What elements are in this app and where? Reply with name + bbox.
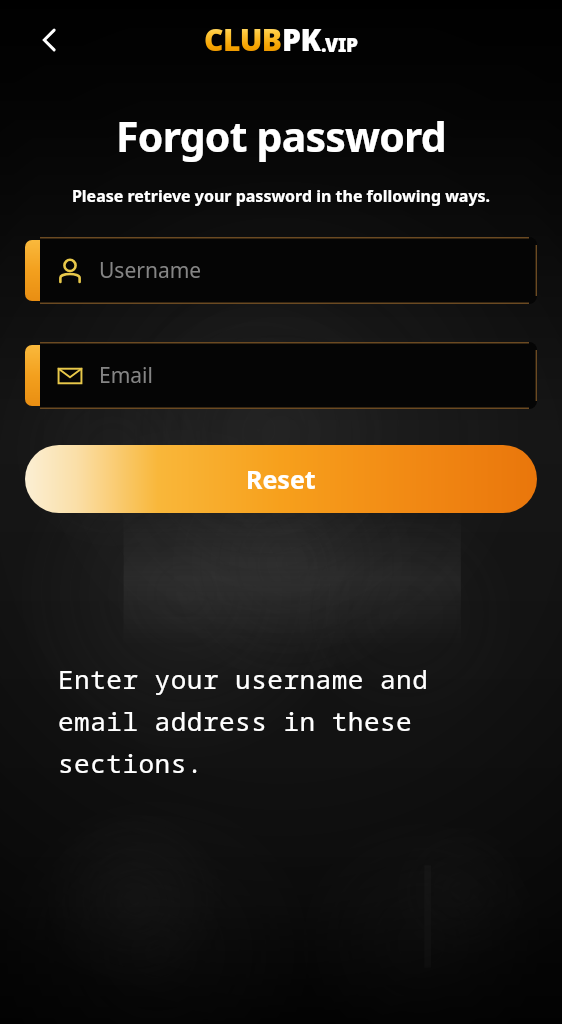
staticText: Username	[99, 256, 202, 285]
staticText: Reset	[246, 462, 316, 496]
button[interactable]: Reset	[25, 445, 537, 513]
staticText: Email	[99, 361, 153, 390]
staticText: Enter your username and email address in…	[58, 661, 518, 781]
staticText: Please retrieve your password in the fol…	[0, 185, 562, 207]
staticText: .VIP	[321, 32, 358, 58]
button[interactable]: Back	[24, 14, 76, 66]
staticText: Forgot password	[0, 108, 562, 164]
button[interactable]: Username	[25, 237, 537, 304]
staticText: PK	[282, 19, 321, 60]
button[interactable]: Email	[25, 342, 537, 409]
staticText: CLUB	[204, 19, 282, 60]
